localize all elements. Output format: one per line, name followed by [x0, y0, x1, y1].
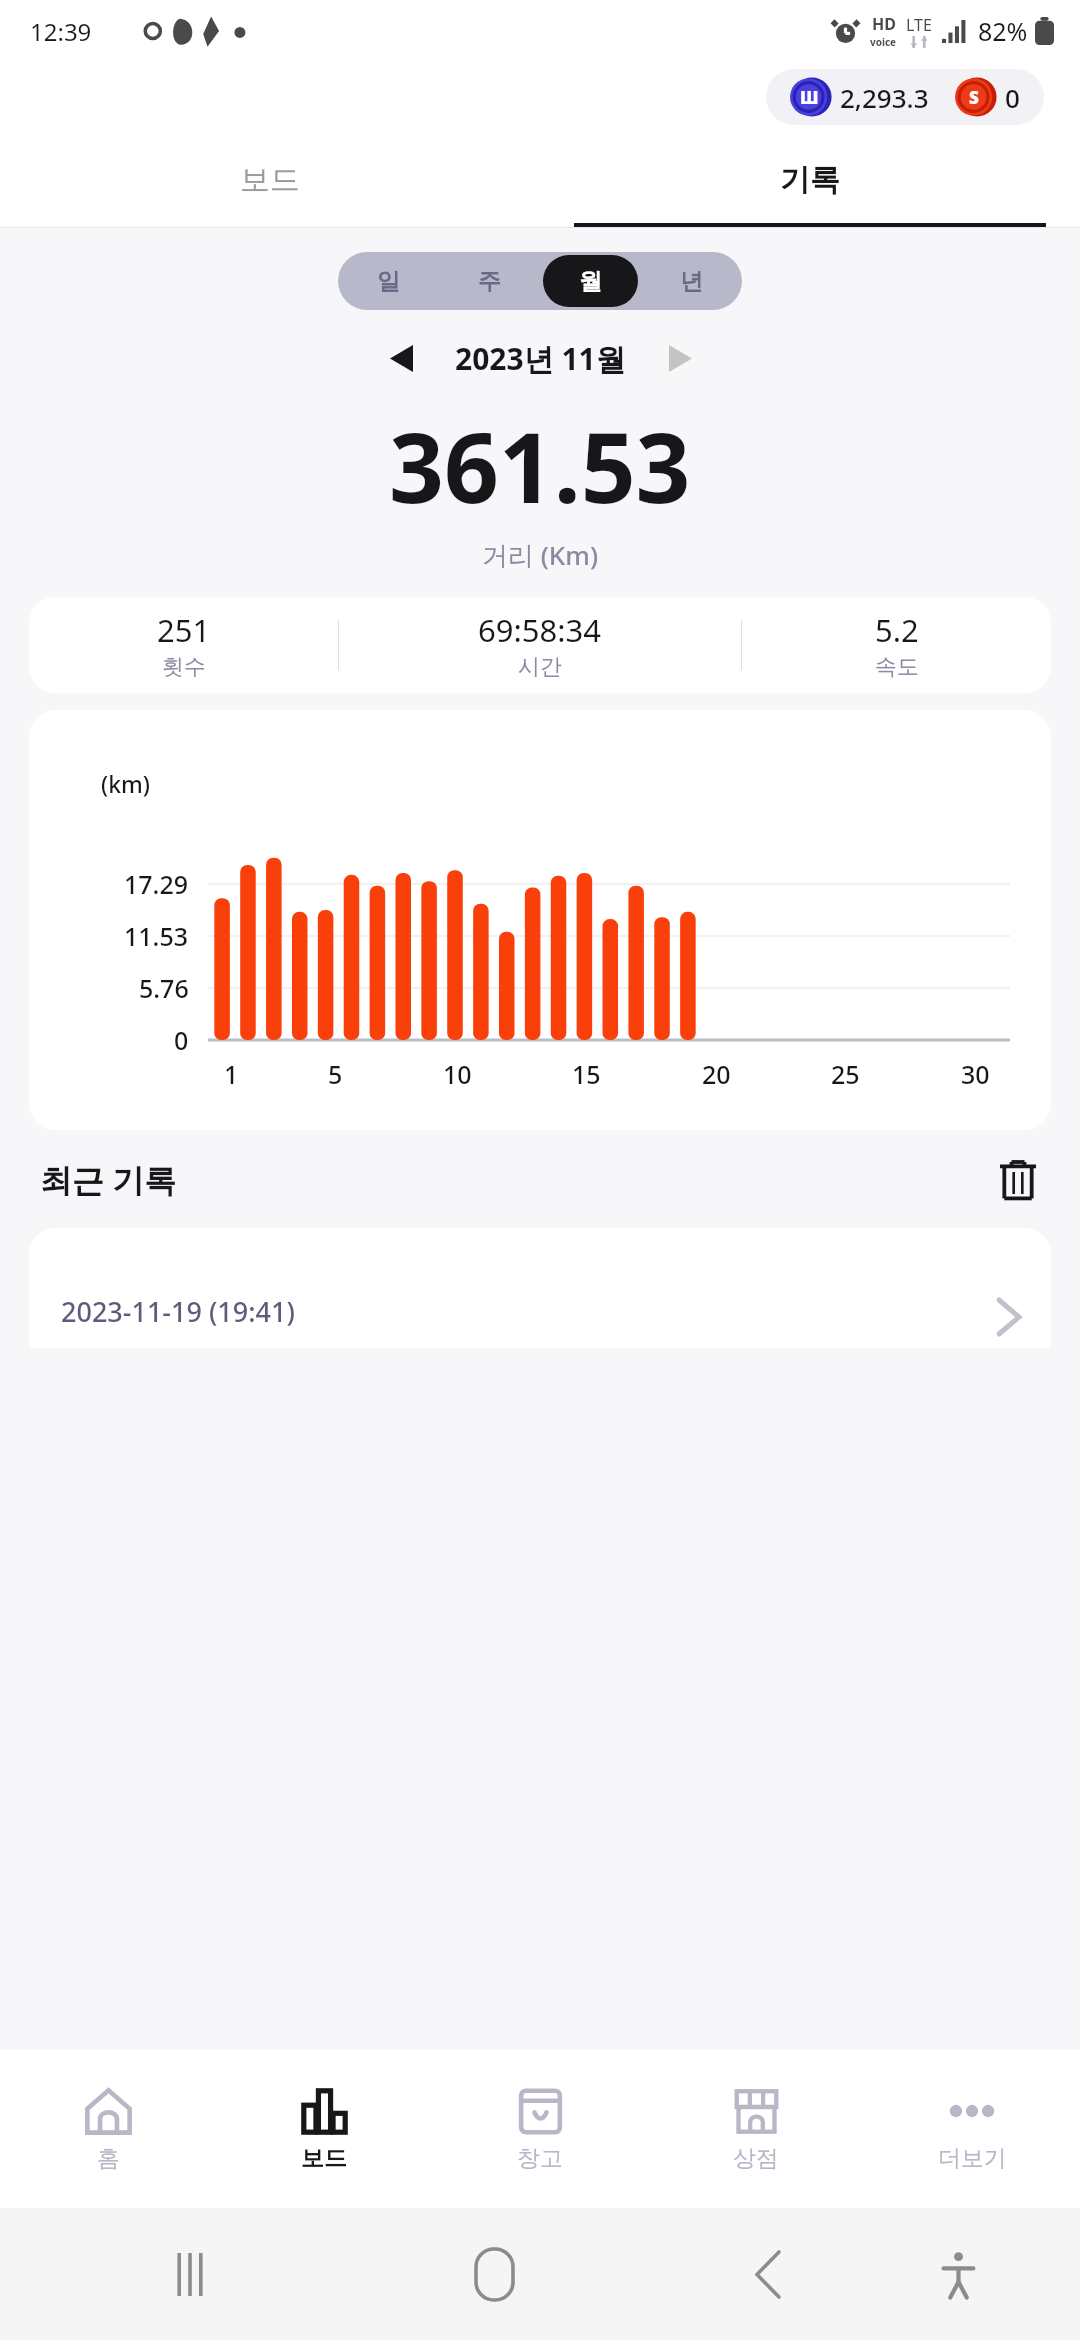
staticText: 2023년 11월	[455, 338, 626, 379]
staticText: 5	[328, 1057, 343, 1091]
staticText: 2023-11-19 (19:41)	[61, 1293, 295, 1330]
staticText: LTE	[906, 14, 932, 36]
staticText: 월	[579, 267, 602, 296]
button[interactable]: 251	[29, 597, 1051, 693]
staticText: 시간	[518, 653, 562, 681]
staticText: Ш	[800, 86, 819, 109]
staticText: 년	[680, 267, 703, 296]
button[interactable]: 주	[442, 255, 537, 307]
button[interactable]: 창고	[432, 2050, 648, 2208]
button[interactable]: 보드	[216, 2050, 432, 2208]
staticText: 홈	[97, 2144, 120, 2173]
button[interactable]: 2023-11-19 (19:41)	[29, 1228, 1051, 1348]
staticText: 20	[702, 1057, 731, 1091]
staticText: 10	[443, 1057, 472, 1091]
button[interactable]: Recents	[114, 2208, 266, 2340]
button[interactable]: 보드	[0, 132, 540, 228]
staticText: 1	[224, 1057, 239, 1091]
staticText: 주	[478, 267, 501, 296]
staticText: 5.76	[139, 971, 189, 1005]
button[interactable]: 일	[341, 255, 436, 307]
button[interactable]: Ш	[766, 69, 1044, 125]
staticText: 기록	[780, 161, 840, 199]
button[interactable]: Next month	[652, 330, 708, 386]
staticText: 361.53	[389, 400, 691, 531]
staticText: HD	[872, 13, 896, 35]
staticText: 0	[174, 1023, 189, 1057]
button[interactable]: Home	[418, 2208, 570, 2340]
staticText: 30	[961, 1057, 990, 1091]
staticText: 11.53	[124, 919, 189, 953]
staticText: 창고	[517, 2144, 563, 2173]
staticText: 거리 (Km)	[482, 537, 599, 573]
staticText: 2,293.3	[840, 80, 929, 115]
button[interactable]: Back	[692, 2208, 844, 2340]
button[interactable]: Delete records	[988, 1150, 1048, 1210]
staticText: 15	[572, 1057, 601, 1091]
staticText: 0	[1005, 80, 1020, 115]
staticText: 일	[377, 267, 400, 296]
button[interactable]: 더보기	[864, 2050, 1080, 2208]
button[interactable]: 기록	[540, 132, 1080, 228]
staticText: 속도	[875, 653, 919, 681]
button[interactable]: 상점	[648, 2050, 864, 2208]
button[interactable]: 년	[644, 255, 739, 307]
staticText: 보드	[301, 2144, 347, 2173]
button[interactable]: 홈	[0, 2050, 216, 2208]
staticText: 횟수	[162, 653, 206, 681]
staticText: 69:58:34	[478, 609, 602, 651]
staticText: 17.29	[124, 867, 189, 901]
staticText: 12:39	[30, 15, 92, 48]
staticText: 최근 기록	[40, 1158, 177, 1202]
staticText: S	[969, 86, 979, 109]
staticText: (km)	[101, 768, 150, 799]
button[interactable]: Accessibility	[882, 2208, 1034, 2340]
staticText: voice	[870, 35, 897, 49]
staticText: 82%	[978, 14, 1028, 48]
button[interactable]: 월	[543, 255, 638, 307]
button[interactable]: Previous month	[373, 330, 429, 386]
staticText: 251	[157, 609, 211, 651]
staticText: 25	[831, 1057, 860, 1091]
staticText: 5.2	[875, 609, 919, 651]
staticText: 보드	[240, 161, 300, 199]
staticText: 더보기	[938, 2144, 1007, 2173]
staticText: 상점	[733, 2144, 779, 2173]
